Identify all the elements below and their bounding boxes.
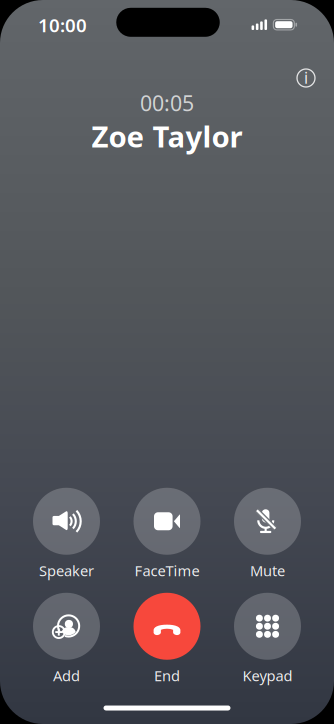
staticText: End	[154, 666, 180, 685]
button[interactable]: FaceTime	[117, 488, 217, 580]
staticText: Mute	[250, 561, 285, 580]
staticText: i	[304, 67, 308, 88]
staticText: 10:00	[38, 13, 87, 37]
button[interactable]: Mute	[217, 488, 317, 580]
button[interactable]: End	[117, 593, 217, 685]
staticText: FaceTime	[134, 561, 199, 580]
button[interactable]: Call details	[289, 61, 323, 95]
staticText: Zoe Taylor	[91, 116, 242, 155]
button[interactable]: Keypad	[217, 593, 317, 685]
button[interactable]: Speaker	[16, 488, 116, 580]
button[interactable]: Add	[16, 593, 116, 685]
staticText: 00:05	[140, 89, 194, 117]
staticText: Speaker	[39, 561, 94, 580]
staticText: Add	[53, 666, 80, 685]
staticText: Keypad	[242, 666, 292, 685]
